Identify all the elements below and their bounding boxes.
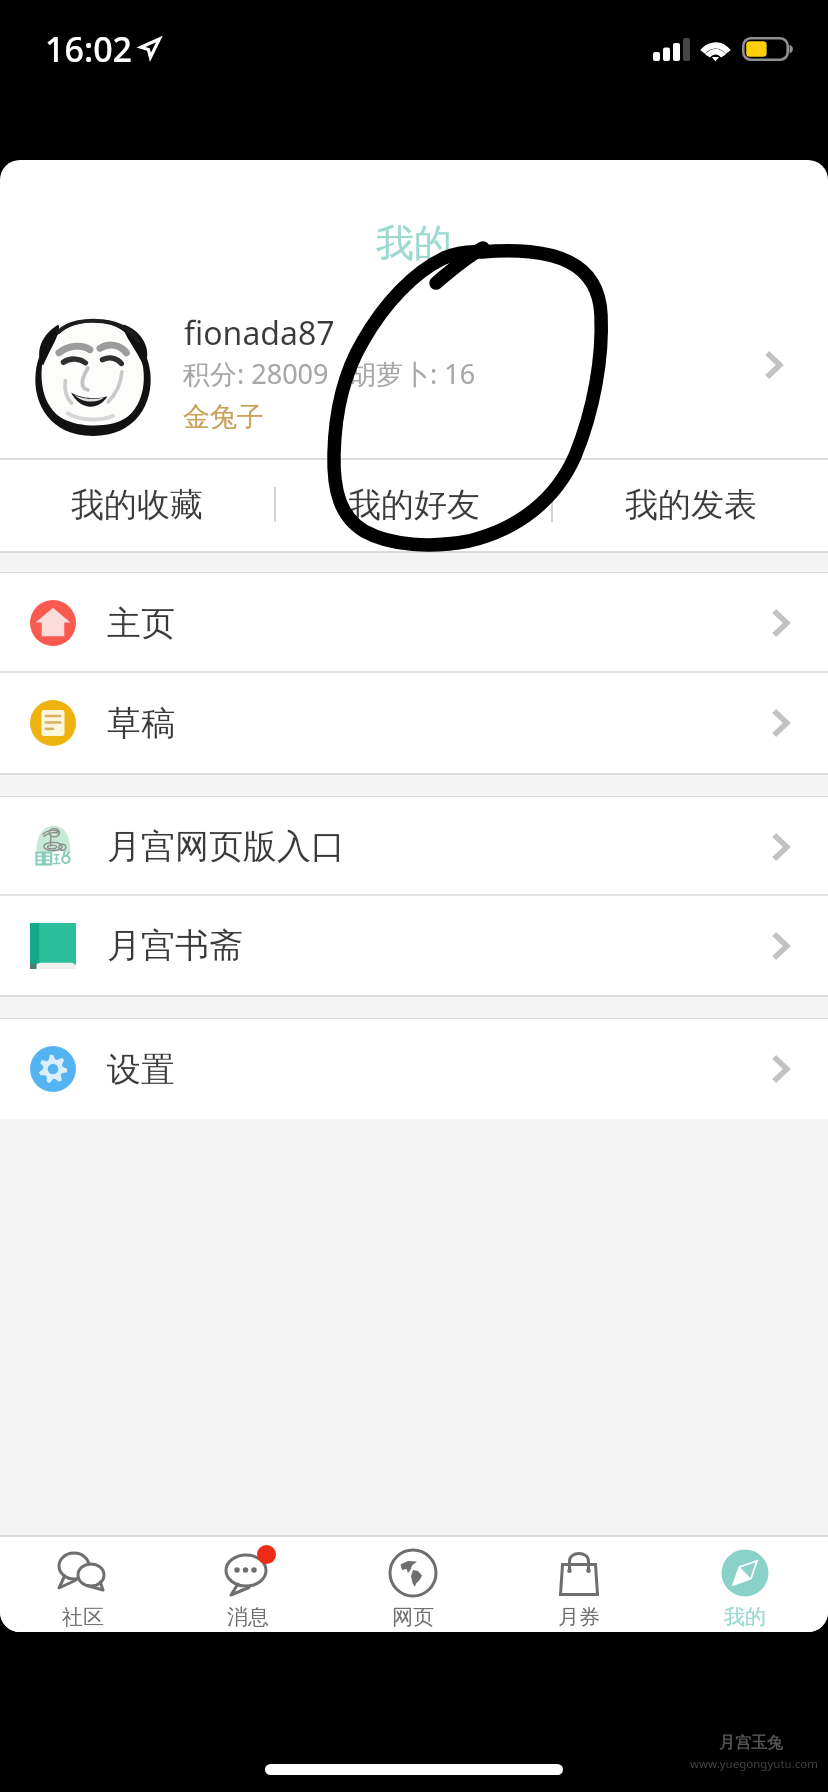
button[interactable]: 我的发表 xyxy=(553,458,828,551)
staticText: 金兔子 xyxy=(183,400,264,434)
button[interactable]: 我的收藏 xyxy=(0,458,274,551)
other: Open xyxy=(766,352,781,378)
other: Open xyxy=(773,834,788,860)
staticText: 社区 xyxy=(62,1604,104,1630)
button[interactable]: 月宫网页版入口 xyxy=(0,797,828,896)
staticText: 16:02 xyxy=(45,26,133,72)
staticText: 月券 xyxy=(558,1604,600,1630)
button[interactable]: 我的 xyxy=(662,1537,828,1632)
button[interactable]: 月宫书斋 xyxy=(0,896,828,995)
staticText: 月宫书斋 xyxy=(107,924,773,967)
staticText: 我的收藏 xyxy=(71,484,203,526)
staticText: 设置 xyxy=(107,1048,773,1091)
staticText: 主页 xyxy=(107,602,773,645)
other: Open xyxy=(773,610,788,636)
staticText: 我的 xyxy=(376,219,452,267)
staticText: 我的 xyxy=(724,1604,766,1630)
button[interactable]: 网页 xyxy=(330,1537,496,1632)
staticText: 网页 xyxy=(392,1604,434,1630)
staticText: 我的发表 xyxy=(625,484,757,526)
staticText: 草稿 xyxy=(107,702,773,745)
button[interactable]: 设置 xyxy=(0,1019,828,1119)
button[interactable]: 消息 xyxy=(165,1537,330,1632)
staticText: 积分: 28009 xyxy=(183,355,329,392)
staticText: 消息 xyxy=(227,1604,269,1630)
other: Open xyxy=(773,1056,788,1082)
staticText: 月宫网页版入口 xyxy=(107,825,773,868)
button[interactable]: fionada87 xyxy=(0,278,828,458)
button[interactable]: 我的好友 xyxy=(276,458,551,551)
staticText: 月宫玉兔 xyxy=(719,1733,783,1753)
other: Open xyxy=(773,710,788,736)
staticText: www.yuegongyutu.com xyxy=(690,1756,818,1772)
staticText: 胡萝卜: 16 xyxy=(349,355,476,392)
button[interactable]: 草稿 xyxy=(0,673,828,773)
staticText: fionada87 xyxy=(184,311,335,355)
other: Open xyxy=(773,933,788,959)
button[interactable]: 社区 xyxy=(0,1537,165,1632)
button[interactable]: 主页 xyxy=(0,573,828,673)
button[interactable]: 月券 xyxy=(496,1537,662,1632)
staticText: 我的好友 xyxy=(348,484,480,526)
